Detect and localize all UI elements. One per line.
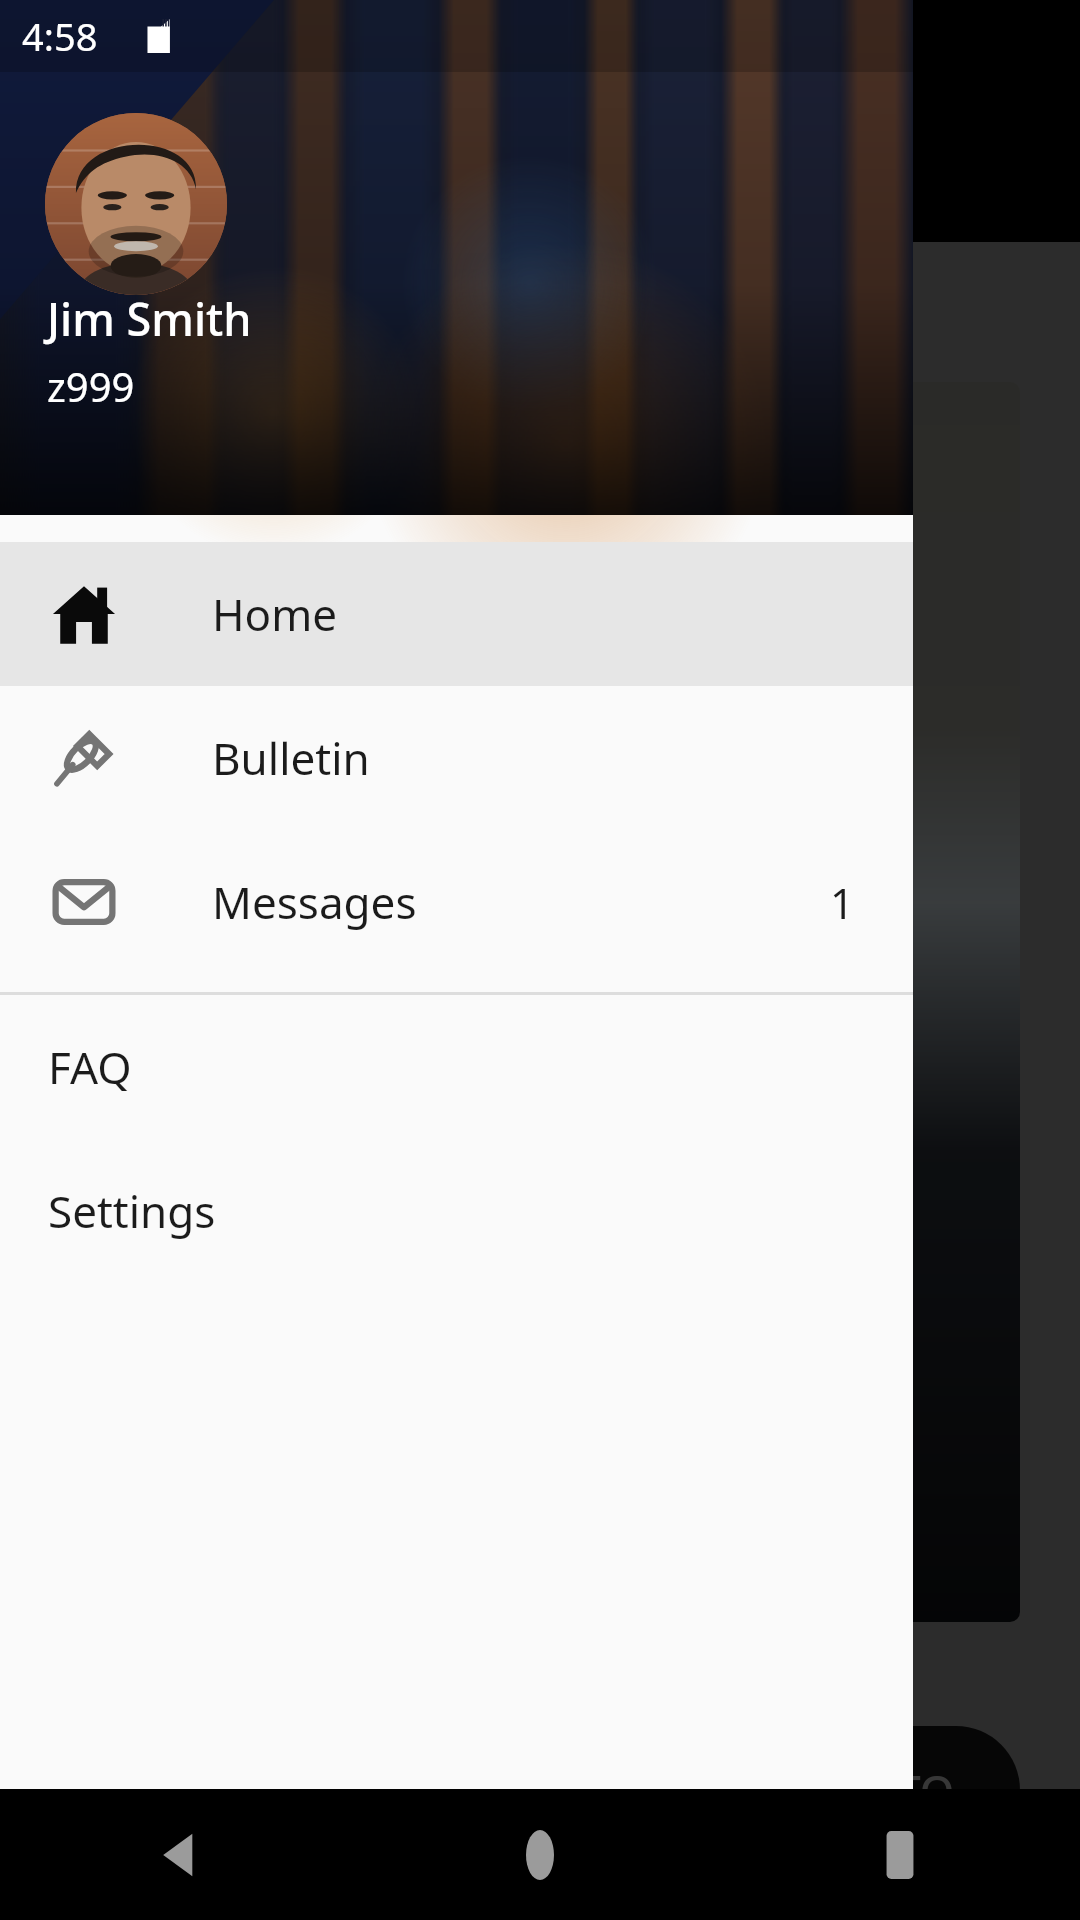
staticText: FAQ <box>48 1037 132 1097</box>
button[interactable]: Bulletin <box>0 686 913 830</box>
staticText: Bulletin <box>212 728 370 788</box>
button[interactable]: Recent apps <box>720 1789 1080 1920</box>
staticText: Messages <box>212 872 417 932</box>
staticText: z999 <box>47 359 135 413</box>
staticText: 1 <box>830 874 855 931</box>
button[interactable]: Action <box>600 1726 1020 1854</box>
staticText: 4:58 <box>22 10 98 62</box>
staticText: Home <box>212 584 338 644</box>
button[interactable]: FAQ <box>0 995 913 1139</box>
button[interactable]: Messages <box>0 830 913 974</box>
button[interactable]: Back <box>0 1789 360 1920</box>
button[interactable]: Home <box>0 542 913 686</box>
staticText: Jim Smith <box>47 288 252 349</box>
button[interactable]: Profile photo <box>45 113 227 295</box>
staticText: TO <box>896 1760 955 1820</box>
staticText: Settings <box>48 1181 216 1241</box>
button[interactable]: Home <box>360 1789 720 1920</box>
button[interactable]: Settings <box>0 1139 913 1283</box>
